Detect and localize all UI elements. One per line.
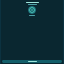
button[interactable] (1, 2, 63, 5)
button[interactable]: Activity ring (28, 6, 36, 14)
button[interactable]: Open details (2, 60, 62, 63)
